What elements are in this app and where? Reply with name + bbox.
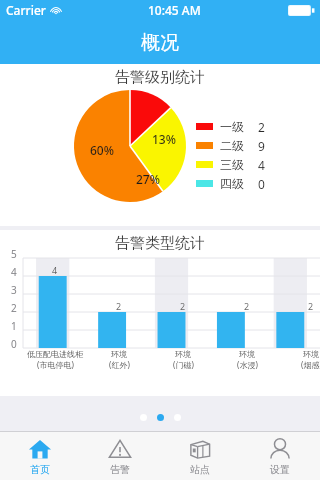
staticText: 60% <box>90 142 114 158</box>
staticText: 首页 <box>30 463 50 476</box>
staticText: 环境 <box>175 349 191 359</box>
staticText: 告警类型统计 <box>0 234 320 253</box>
staticText: (红外) <box>109 359 130 370</box>
staticText: 站点 <box>190 463 210 476</box>
staticText: 三级 <box>220 157 244 172</box>
staticText: 一级 <box>220 119 244 134</box>
staticText: 3 <box>11 283 17 297</box>
staticText: 2 <box>244 300 250 312</box>
staticText: 低压配电进线柜 <box>27 349 83 359</box>
staticText: 2 <box>258 119 265 135</box>
button[interactable]: 告警 <box>80 432 160 480</box>
staticText: 概况 <box>141 31 179 55</box>
staticText: 设置 <box>270 463 290 476</box>
staticText: 5 <box>11 247 17 261</box>
staticText: 告警级别统计 <box>0 68 320 87</box>
button[interactable]: 站点 <box>160 432 240 480</box>
staticText: 0 <box>11 337 17 351</box>
staticText: 环境 <box>111 349 127 359</box>
staticText: (水浸) <box>237 359 258 370</box>
staticText: 13% <box>152 131 176 147</box>
staticText: 4 <box>52 264 58 276</box>
staticText: 二级 <box>220 138 244 153</box>
staticText: 2 <box>116 300 122 312</box>
staticText: (烟感) <box>301 359 320 370</box>
staticText: 10:45 AM <box>148 2 201 18</box>
staticText: 2 <box>11 301 17 315</box>
staticText: 四级 <box>220 176 244 191</box>
staticText: 4 <box>11 265 17 279</box>
staticText: 27% <box>136 171 160 187</box>
staticText: 9 <box>258 138 265 154</box>
staticText: 4 <box>258 157 265 173</box>
button[interactable]: 首页 <box>0 432 80 480</box>
staticText: (市电停电) <box>37 359 74 370</box>
button[interactable]: 设置 <box>240 432 320 480</box>
staticText: (门磁) <box>173 359 194 370</box>
staticText: 环境 <box>239 349 255 359</box>
staticText: 0 <box>258 176 265 192</box>
staticText: 2 <box>180 300 186 312</box>
staticText: 告警 <box>110 463 130 476</box>
staticText: 1 <box>11 319 17 333</box>
staticText: 环境 <box>303 349 319 359</box>
staticText: Carrier <box>6 2 46 18</box>
staticText: 2 <box>308 300 314 312</box>
